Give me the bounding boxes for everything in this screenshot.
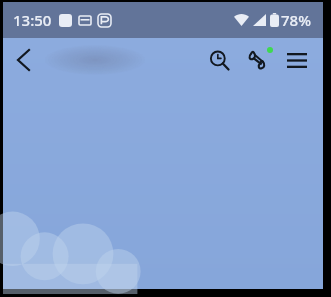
staticText: 78% [281,10,311,30]
staticText: 13:50 [13,10,52,30]
button[interactable]: Search history [199,40,239,80]
button[interactable]: Title [45,45,145,75]
button[interactable]: Call [239,40,279,80]
button[interactable]: Menu [279,40,315,80]
button[interactable]: Back [3,40,43,80]
